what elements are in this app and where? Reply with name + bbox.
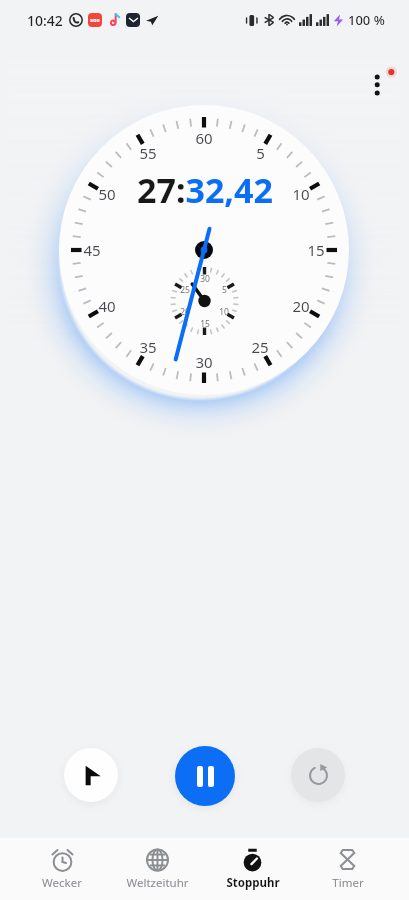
staticText: 15	[200, 318, 210, 330]
staticText: 25	[180, 284, 190, 296]
staticText: 55	[139, 143, 157, 163]
button[interactable]: Pause	[175, 746, 235, 806]
staticText: 25	[251, 337, 269, 357]
staticText: 45	[83, 240, 101, 260]
button[interactable]: Wecker	[14, 838, 110, 891]
staticText: 40	[98, 296, 116, 316]
staticText: 35	[139, 337, 157, 357]
button[interactable]: Stoppuhr	[205, 838, 300, 891]
staticText: 20	[292, 296, 310, 316]
staticText: 50	[98, 184, 116, 204]
staticText: sos	[90, 16, 100, 24]
staticText: 10:42	[27, 11, 63, 30]
staticText: 100 %	[348, 11, 385, 29]
staticText: 20	[180, 306, 190, 318]
staticText: 60	[195, 128, 213, 148]
staticText: Wecker	[42, 875, 82, 891]
staticText: 30	[200, 273, 210, 285]
staticText: Timer	[332, 875, 364, 891]
staticText: Stoppuhr	[226, 875, 280, 891]
staticText: 30	[195, 352, 213, 372]
staticText: 5	[222, 284, 227, 296]
button[interactable]: More options	[355, 60, 403, 108]
staticText: Weltzeituhr	[126, 875, 189, 891]
button[interactable]: Weltzeituhr	[110, 838, 205, 891]
staticText: 5	[256, 143, 265, 163]
button[interactable]: Timer	[300, 838, 395, 891]
staticText: 10	[292, 184, 310, 204]
button[interactable]: Lap	[64, 748, 118, 802]
staticText: 27:32,42	[137, 167, 273, 213]
button[interactable]: Reset	[291, 748, 345, 802]
staticText: 15	[307, 240, 325, 260]
staticText: 10	[219, 306, 229, 318]
